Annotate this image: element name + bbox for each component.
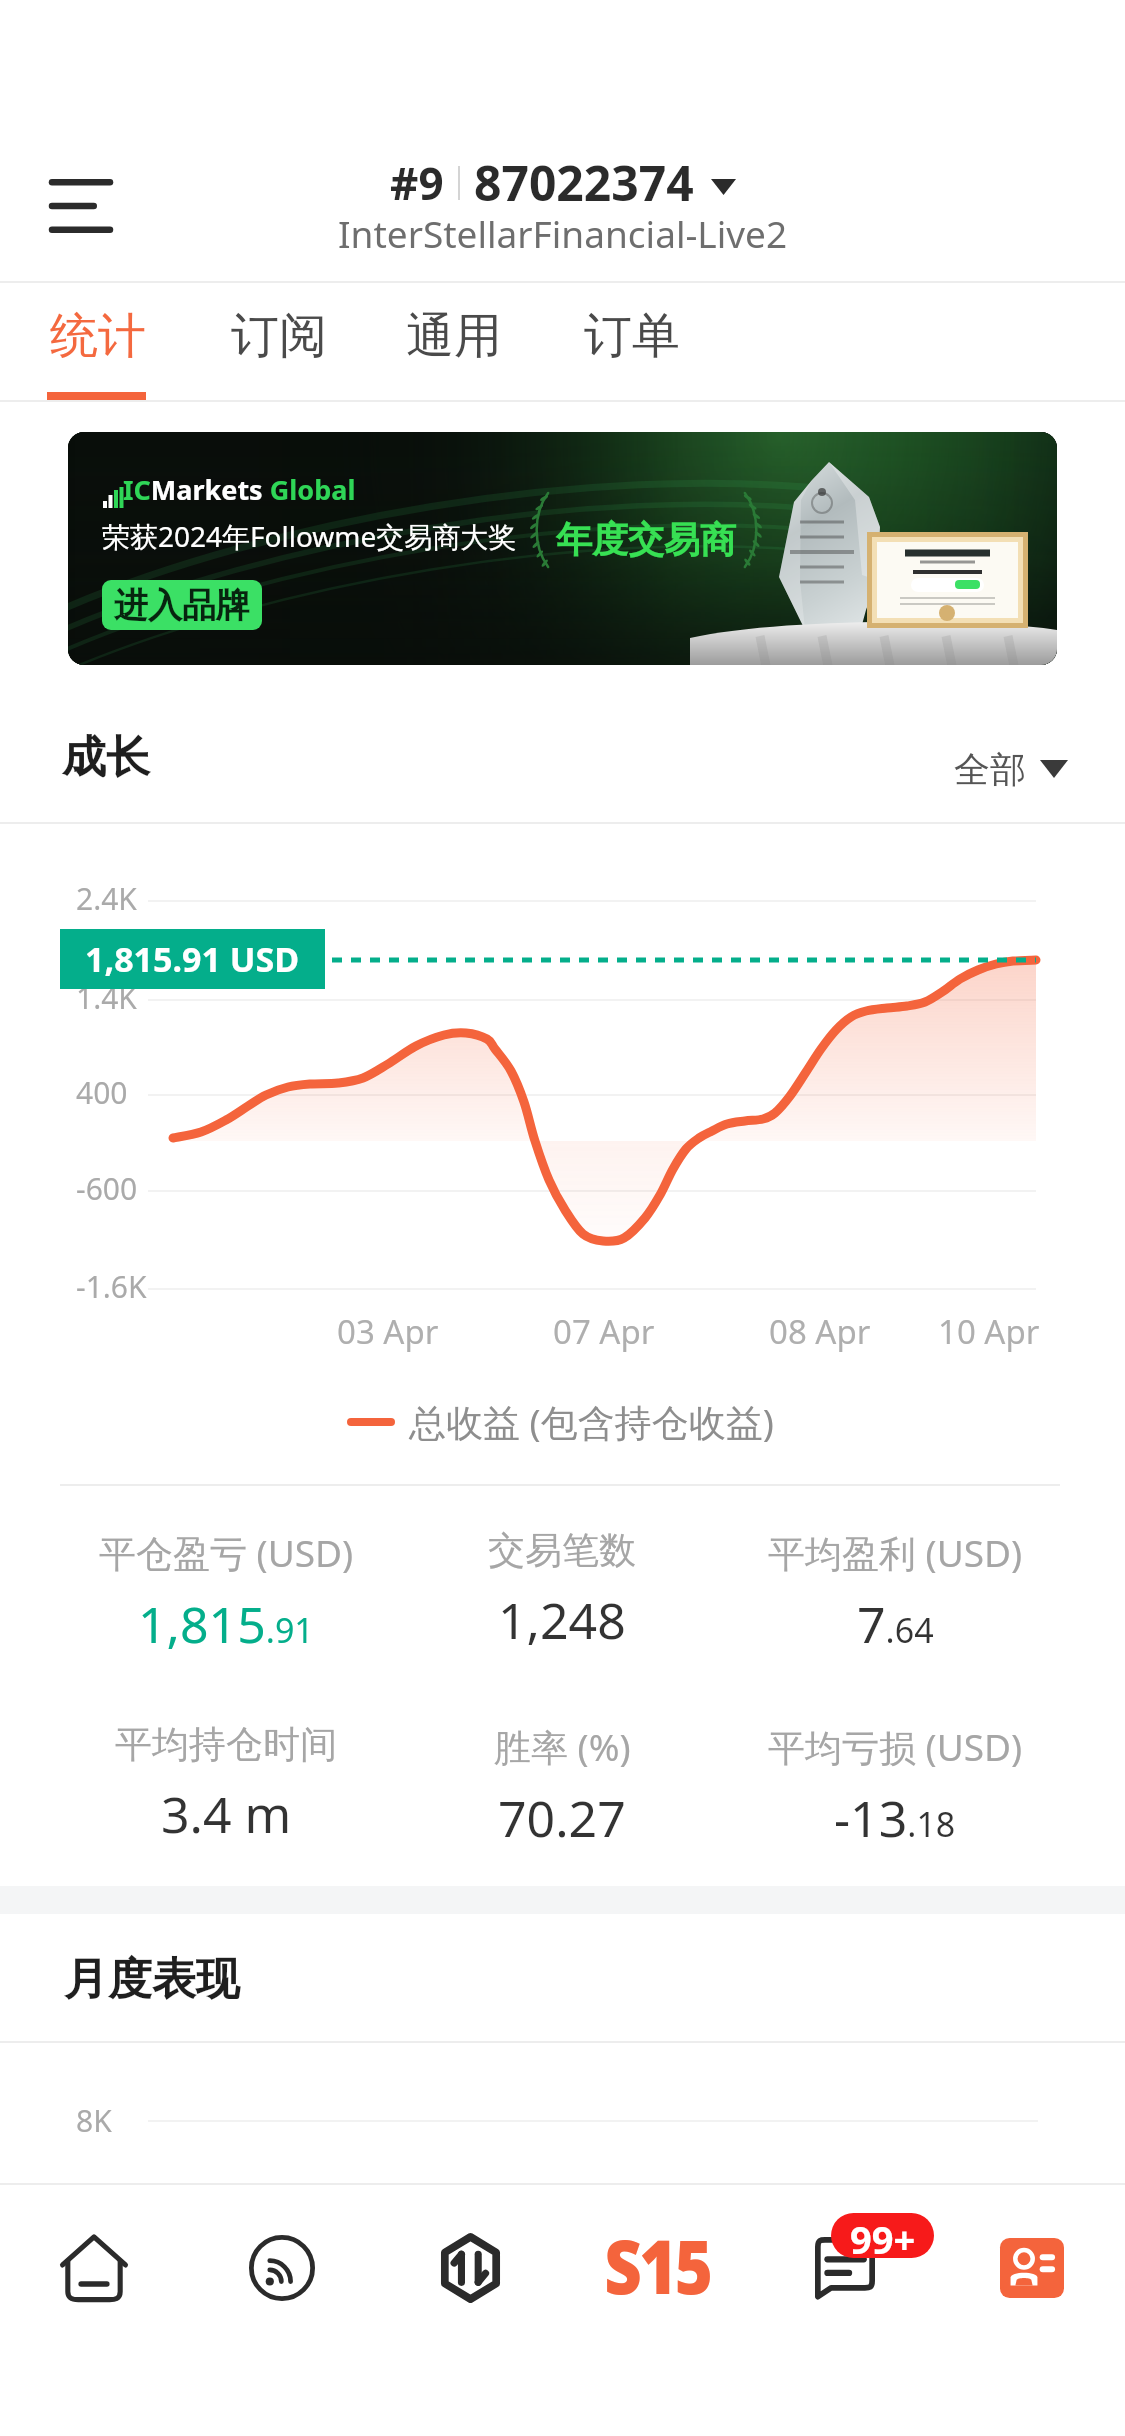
staticText: 70.27 xyxy=(498,1784,626,1852)
staticText: 1,815.91 USD xyxy=(85,936,300,982)
staticText: 400 xyxy=(76,1072,128,1113)
button[interactable]: 进入品牌 xyxy=(102,580,262,630)
staticText: 平仓盈亏 (USD) xyxy=(99,1527,354,1578)
staticText: -13.18 xyxy=(834,1784,956,1852)
staticText: 订单 xyxy=(584,306,680,366)
staticText: 08 Apr xyxy=(769,1309,871,1354)
staticText: 03 Apr xyxy=(337,1309,439,1354)
staticText: #9 xyxy=(390,153,444,213)
staticText: 3.4 m xyxy=(161,1780,292,1848)
button[interactable]: 订阅 xyxy=(229,283,329,417)
staticText: 平均持仓时间 xyxy=(115,1721,337,1768)
staticText: 月度表现 xyxy=(64,1952,240,2007)
staticText: S15 xyxy=(604,2215,711,2316)
staticText: 2.4K xyxy=(76,878,137,919)
staticText: 成长 xyxy=(62,730,150,785)
staticText: 年度交易商 xyxy=(556,517,736,562)
staticText: 全部 xyxy=(954,747,1026,792)
button[interactable]: Messages xyxy=(760,2192,930,2344)
staticText: 通用 xyxy=(406,306,502,366)
staticText: 8K xyxy=(76,2100,112,2141)
button[interactable]: Menu xyxy=(22,156,139,256)
staticText: 07 Apr xyxy=(553,1309,655,1354)
staticText: 交易笔数 xyxy=(488,1527,636,1574)
staticText: 平均亏损 (USD) xyxy=(768,1721,1023,1772)
staticText: 平均盈利 (USD) xyxy=(768,1527,1023,1578)
staticText: 统计 xyxy=(50,306,146,366)
staticText: 1,248 xyxy=(498,1586,626,1654)
button[interactable]: 全部 xyxy=(954,739,1074,799)
button[interactable]: Trade xyxy=(385,2192,555,2344)
staticText: -1.6K xyxy=(76,1266,147,1307)
button[interactable]: Profile xyxy=(947,2192,1117,2344)
button[interactable]: S15 xyxy=(572,2192,742,2344)
button[interactable]: 统计 xyxy=(48,283,148,417)
staticText: 荣获2024年Followme交易商大奖 xyxy=(102,517,517,555)
button[interactable]: #9 xyxy=(0,150,1125,265)
staticText: InterStellarFinancial-Live2 xyxy=(338,208,788,258)
staticText: 进入品牌 xyxy=(114,584,250,627)
button[interactable]: IC Markets Global advertisement xyxy=(68,432,1057,665)
staticText: 99+ xyxy=(850,2213,916,2258)
staticText: ICMarkets Global xyxy=(123,471,356,508)
staticText: 1,815.91 xyxy=(138,1590,314,1658)
staticText: 订阅 xyxy=(231,306,327,366)
staticText: 7.64 xyxy=(857,1590,934,1658)
staticText: 87022374 xyxy=(474,150,694,215)
button[interactable]: 通用 xyxy=(404,283,504,417)
button[interactable]: Signals xyxy=(197,2192,367,2344)
button[interactable]: Home xyxy=(9,2192,179,2344)
staticText: 总收益 (包含持仓收益) xyxy=(409,1396,774,1447)
button[interactable]: 订单 xyxy=(582,283,682,417)
staticText: -600 xyxy=(76,1168,138,1209)
staticText: 10 Apr xyxy=(938,1309,1040,1354)
staticText: 胜率 (%) xyxy=(494,1721,631,1772)
staticText: 1.4K xyxy=(76,977,137,1018)
